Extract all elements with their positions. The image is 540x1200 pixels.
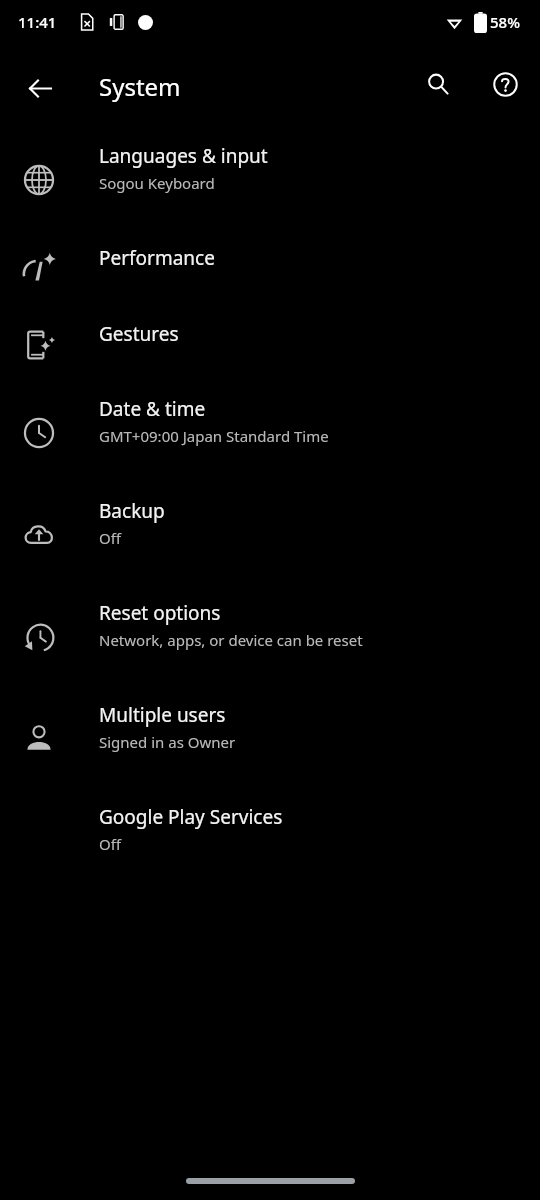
staticText: Reset options	[99, 600, 221, 626]
button[interactable]: Backup	[0, 498, 540, 573]
staticText: Sogou Keyboard	[99, 173, 215, 193]
button[interactable]: Performance	[0, 245, 540, 300]
staticText: Performance	[99, 245, 215, 271]
staticText: Google Play Services	[99, 804, 283, 830]
button[interactable]: Search	[414, 60, 462, 108]
staticText: Backup	[99, 498, 165, 524]
staticText: Off	[99, 528, 122, 548]
button[interactable]: Languages & input	[0, 143, 540, 218]
button[interactable]: Help	[481, 60, 529, 108]
staticText: System	[99, 70, 181, 103]
staticText: 58%	[490, 12, 520, 32]
button[interactable]: Google Play Services	[0, 804, 540, 879]
staticText: Languages & input	[99, 143, 268, 169]
staticText: Off	[99, 834, 122, 854]
staticText: Gestures	[99, 321, 179, 347]
staticText: Signed in as Owner	[99, 732, 236, 752]
button[interactable]: Date & time	[0, 396, 540, 471]
button[interactable]: Gestures	[0, 321, 540, 376]
staticText: GMT+09:00 Japan Standard Time	[99, 426, 329, 446]
staticText: Multiple users	[99, 702, 226, 728]
button[interactable]: Back	[16, 64, 64, 112]
staticText: 11:41	[18, 12, 57, 32]
staticText: Date & time	[99, 396, 206, 422]
staticText: Network, apps, or device can be reset	[99, 630, 363, 650]
button[interactable]: Reset options	[0, 600, 540, 675]
button[interactable]: Multiple users	[0, 702, 540, 777]
